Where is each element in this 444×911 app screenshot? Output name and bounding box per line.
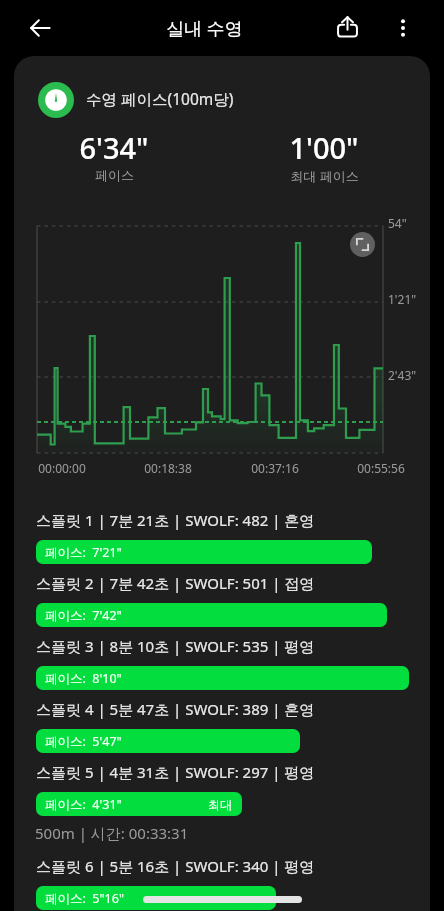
staticText: 54"	[388, 215, 407, 231]
staticText: 스플릿 5 | 4분 31초 | SWOLF: 297 | 평영	[36, 762, 315, 782]
staticText: 페이스: 7'21"	[45, 544, 122, 561]
button[interactable]: Share	[323, 4, 371, 52]
staticText: 최대 페이스	[290, 167, 359, 185]
staticText: 스플릿 2 | 7분 42초 | SWOLF: 501 | 접영	[36, 573, 315, 593]
staticText: 스플릿 1 | 7분 21초 | SWOLF: 482 | 혼영	[36, 510, 315, 530]
button[interactable]: 페이스: 8'10"	[36, 666, 409, 690]
staticText: 페이스: 5'47"	[45, 733, 122, 750]
staticText: 1'00"	[289, 128, 359, 167]
staticText: 최대	[208, 797, 232, 812]
staticText: 페이스	[95, 167, 134, 183]
staticText: 00:55:56	[331, 460, 430, 476]
staticText: 실내 수영	[142, 16, 267, 41]
staticText: 00:18:38	[118, 460, 218, 476]
staticText: 페이스: 7'42"	[45, 607, 122, 624]
button[interactable]: 페이스: 5"16"	[36, 886, 276, 910]
staticText: 00:00:00	[14, 460, 112, 476]
button[interactable]: 페이스: 7'21"	[36, 540, 372, 564]
staticText: 2'43"	[388, 367, 417, 383]
staticText: 페이스: 8'10"	[45, 670, 122, 687]
staticText: 500m | 시간: 00:33:31	[35, 823, 189, 843]
button[interactable]: 페이스: 4'31"	[36, 792, 242, 816]
staticText: 스플릿 4 | 5분 47초 | SWOLF: 389 | 혼영	[36, 699, 315, 719]
staticText: 1'21"	[388, 291, 417, 307]
button[interactable]: More options	[379, 4, 427, 52]
staticText: 00:37:16	[225, 460, 325, 476]
staticText: 페이스: 4'31"	[45, 796, 122, 813]
button[interactable]: Expand chart	[350, 232, 375, 257]
staticText: 스플릿 6 | 5분 16초 | SWOLF: 340 | 평영	[36, 856, 315, 876]
button[interactable]: 페이스: 7'42"	[36, 603, 387, 627]
button[interactable]: 페이스: 5'47"	[36, 729, 300, 753]
staticText: 스플릿 3 | 8분 10초 | SWOLF: 535 | 평영	[36, 636, 315, 656]
button[interactable]: Back	[16, 4, 64, 52]
staticText: 페이스: 5"16"	[45, 890, 125, 907]
staticText: 수영 페이스(100m당)	[86, 88, 234, 109]
staticText: 6'34"	[79, 128, 149, 167]
